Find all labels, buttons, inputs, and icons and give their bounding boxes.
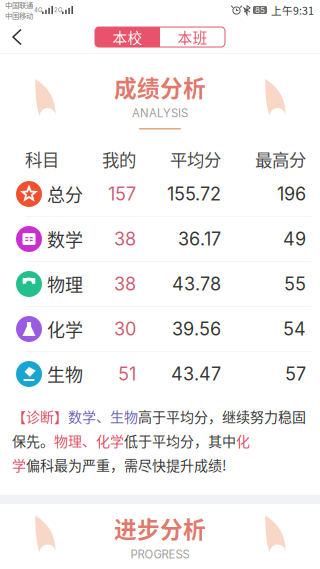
- staticText: 57: [285, 363, 306, 385]
- staticText: 本班: [177, 26, 207, 48]
- staticText: 本校: [112, 26, 142, 48]
- staticText: 38: [114, 273, 136, 295]
- staticText: 38: [114, 228, 136, 250]
- staticText: 最高分: [255, 146, 306, 172]
- staticText: 我的: [102, 146, 136, 172]
- staticText: 39.56: [172, 318, 221, 340]
- button[interactable]: 化学: [0, 307, 320, 351]
- staticText: 化学: [47, 316, 83, 342]
- button[interactable]: 总分: [0, 172, 320, 216]
- staticText: 成绩分析: [114, 70, 206, 103]
- staticText: 中国联通: [5, 0, 33, 10]
- staticText: 36.17: [178, 228, 221, 250]
- staticText: 30: [114, 318, 136, 340]
- staticText: 85: [255, 5, 265, 15]
- button[interactable]: 数学: [0, 217, 320, 261]
- staticText: 51: [118, 363, 136, 385]
- staticText: 157: [108, 183, 136, 205]
- button[interactable]: 生物: [0, 352, 320, 396]
- staticText: 科目: [25, 146, 59, 172]
- button[interactable]: 返回: [0, 20, 34, 54]
- staticText: 物理: [47, 271, 83, 297]
- staticText: 49: [283, 228, 306, 250]
- staticText: 155.72: [167, 183, 221, 205]
- staticText: 43.78: [172, 273, 221, 295]
- staticText: 学偏科最为严重，需尽快提升成绩!: [12, 454, 227, 475]
- button[interactable]: 本班: [160, 27, 225, 47]
- staticText: 上午9:31: [271, 2, 314, 18]
- staticText: ANALYSIS: [132, 106, 188, 120]
- staticText: 平均分: [170, 146, 221, 172]
- staticText: PROGRESS: [130, 548, 189, 561]
- staticText: 43.47: [171, 363, 221, 385]
- staticText: 4G: [34, 6, 42, 14]
- staticText: 总分: [47, 181, 83, 207]
- staticText: 进步分析: [114, 512, 206, 544]
- staticText: 保先。物理、化学低于平均分，其中化: [12, 430, 250, 451]
- staticText: 55: [284, 273, 306, 295]
- staticText: 54: [283, 318, 306, 340]
- button[interactable]: 物理: [0, 262, 320, 306]
- staticText: 2G: [54, 6, 62, 14]
- button[interactable]: 本校: [95, 27, 160, 47]
- staticText: 数学: [47, 226, 83, 252]
- staticText: 196: [277, 183, 306, 205]
- staticText: 【诊断】数学、生物高于平均分，继续努力稳固: [12, 406, 306, 426]
- staticText: 生物: [47, 361, 83, 387]
- staticText: 中国移动: [5, 10, 33, 21]
